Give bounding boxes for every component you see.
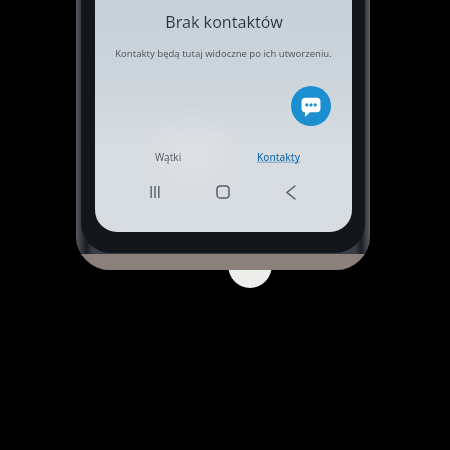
button[interactable]: Kontakty <box>239 144 317 170</box>
staticText: Kontakty <box>257 150 300 164</box>
button[interactable]: Nowa wiadomość <box>291 86 331 126</box>
button[interactable]: Wątki <box>131 144 205 170</box>
staticText: Kontakty będą tutaj widoczne po ich utwo… <box>115 47 332 60</box>
button[interactable]: Ostatnie <box>135 178 175 206</box>
button[interactable]: Wstecz <box>271 178 311 206</box>
staticText: Wątki <box>155 150 182 164</box>
staticText: Brak kontaktów <box>165 11 283 33</box>
button[interactable]: Ekran główny <box>203 178 243 206</box>
